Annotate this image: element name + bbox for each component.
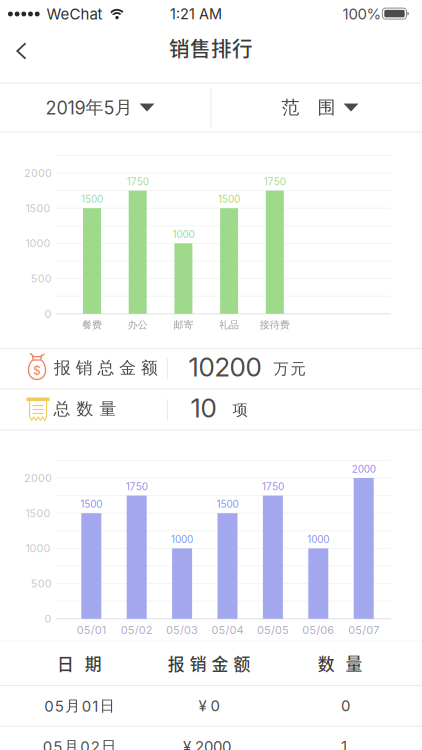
staticText: 接待费	[260, 319, 290, 331]
staticText: 1500	[81, 193, 103, 205]
staticText: 1	[341, 737, 347, 750]
staticText: 邮寄	[173, 319, 193, 331]
staticText: 量	[99, 398, 116, 420]
staticText: 1000	[25, 237, 50, 250]
staticText: 100%	[342, 5, 381, 23]
staticText: 1500	[80, 498, 102, 510]
staticText: 报	[168, 651, 185, 675]
staticText: 500	[31, 272, 52, 285]
staticText: 05/04	[211, 623, 243, 637]
staticText: 销售排行	[169, 33, 253, 62]
staticText: ¥ 0	[198, 697, 219, 715]
staticText: 2000	[24, 166, 52, 180]
staticText: 0	[44, 307, 51, 320]
staticText: 1000	[307, 533, 329, 545]
staticText: 05/07	[348, 623, 379, 637]
staticText: 金	[212, 651, 229, 675]
button[interactable]: 2019年5月	[0, 83, 205, 131]
staticText: 礼品	[219, 319, 239, 331]
staticText: 期	[85, 651, 102, 675]
button[interactable]	[0, 39, 44, 63]
staticText: 销	[76, 357, 93, 379]
staticText: 10	[190, 392, 216, 424]
staticText: 总	[97, 357, 114, 379]
staticText: 万元	[273, 359, 305, 379]
staticText: 金	[119, 357, 136, 379]
staticText: 总	[53, 398, 70, 420]
staticText: 0	[341, 697, 350, 715]
staticText: 范 围	[281, 96, 335, 119]
staticText: 2000	[24, 471, 52, 485]
staticText: 05/02	[121, 623, 153, 637]
staticText: 0	[44, 612, 51, 625]
staticText: 05/03	[166, 623, 198, 637]
staticText: 1750	[264, 176, 286, 188]
staticText: 1000	[172, 228, 194, 240]
staticText: 额	[141, 357, 158, 379]
staticText: 500	[31, 577, 52, 590]
staticText: 办公	[128, 319, 148, 331]
staticText: 1500	[25, 507, 50, 520]
staticText: 数	[318, 651, 335, 675]
staticText: 额	[233, 651, 250, 675]
staticText: WeChat	[46, 5, 102, 23]
staticText: 1500	[25, 202, 50, 215]
staticText: 1:21 AM	[170, 5, 222, 23]
staticText: 报	[54, 357, 71, 379]
staticText: 05月02日	[43, 737, 116, 750]
staticText: 05月01日	[44, 696, 115, 715]
staticText: 05/05	[257, 623, 289, 637]
staticText: 餐费	[82, 319, 102, 331]
staticText: 1500	[218, 193, 240, 205]
staticText: 项	[232, 400, 247, 420]
staticText: $	[33, 363, 41, 378]
staticText: 1750	[262, 481, 284, 493]
staticText: ¥ 2000	[183, 737, 231, 750]
staticText: 2019年5月	[45, 96, 132, 119]
staticText: 数	[76, 398, 93, 420]
staticText: 1750	[126, 481, 148, 493]
staticText: 2000	[352, 463, 376, 475]
staticText: 1000	[25, 542, 50, 555]
staticText: 05/01	[77, 623, 106, 637]
staticText: 销	[190, 651, 207, 675]
staticText: 1750	[127, 176, 149, 188]
button[interactable]: 范 围	[215, 83, 422, 131]
staticText: 日	[57, 651, 74, 675]
staticText: 量	[345, 651, 362, 675]
staticText: 05/06	[302, 623, 334, 637]
staticText: 1500	[216, 498, 238, 510]
staticText: 1000	[171, 533, 193, 545]
staticText: 10200	[188, 351, 261, 383]
